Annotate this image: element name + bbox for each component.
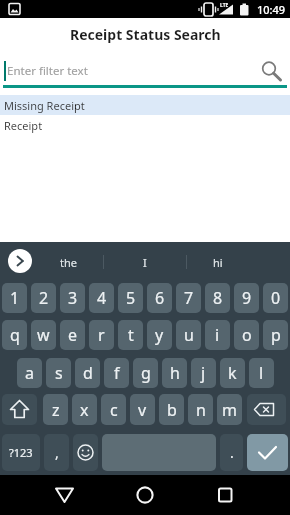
button[interactable]: Missing Receipt	[0, 95, 290, 115]
staticText: the	[60, 255, 77, 270]
button[interactable]: n	[188, 394, 213, 425]
staticText: 5	[126, 287, 136, 309]
button[interactable]	[247, 394, 286, 425]
staticText: Receipt Status Search	[70, 25, 221, 44]
staticText: LTE	[220, 2, 229, 9]
button[interactable]: q	[2, 320, 27, 350]
button[interactable]	[207, 478, 242, 512]
staticText: 8	[213, 287, 223, 309]
staticText: k	[228, 362, 237, 384]
button[interactable]: u	[176, 320, 201, 350]
button[interactable]	[127, 478, 162, 512]
staticText: f	[114, 362, 120, 384]
button[interactable]	[247, 434, 288, 471]
button[interactable]: j	[191, 358, 216, 388]
button[interactable]: x	[72, 394, 97, 425]
staticText: Missing Receipt	[4, 98, 85, 113]
button[interactable]: h	[162, 358, 187, 388]
staticText: v	[138, 399, 147, 421]
button[interactable]: e	[60, 320, 85, 350]
button[interactable]: l	[249, 358, 274, 388]
staticText: z	[52, 399, 60, 421]
button[interactable]: v	[130, 394, 155, 425]
staticText: u	[184, 324, 194, 346]
button[interactable]	[8, 249, 32, 273]
staticText: i	[215, 324, 220, 346]
button[interactable]: f	[104, 358, 129, 388]
staticText: a	[25, 362, 34, 384]
staticText: e	[68, 324, 78, 346]
staticText: t	[128, 324, 134, 346]
button[interactable]: i	[205, 320, 230, 350]
staticText: q	[10, 324, 20, 346]
staticText: n	[196, 399, 206, 421]
button[interactable]	[47, 478, 82, 512]
staticText: l	[259, 362, 264, 384]
button[interactable]: b	[159, 394, 184, 425]
button[interactable]: 9	[234, 283, 259, 313]
button[interactable]: t	[118, 320, 143, 350]
button[interactable]: g	[133, 358, 158, 388]
staticText: I	[143, 255, 147, 270]
button[interactable]: I	[104, 242, 186, 282]
staticText: h	[170, 362, 180, 384]
button[interactable]: k	[220, 358, 245, 388]
button[interactable]: w	[31, 320, 56, 350]
staticText: o	[242, 324, 252, 346]
button[interactable]: Receipt	[0, 115, 290, 135]
staticText: Receipt	[4, 118, 43, 133]
button[interactable]: s	[46, 358, 71, 388]
staticText: 7	[184, 287, 194, 309]
staticText: m	[222, 399, 237, 421]
button[interactable]: r	[89, 320, 114, 350]
button[interactable]: o	[234, 320, 259, 350]
staticText: x	[80, 399, 89, 421]
staticText: r	[98, 324, 105, 346]
button[interactable]: 4	[89, 283, 114, 313]
button[interactable]: 5	[118, 283, 143, 313]
staticText: w	[37, 324, 50, 346]
staticText: 6	[155, 287, 165, 309]
staticText: g	[141, 362, 151, 384]
staticText: 4	[97, 287, 107, 309]
staticText: .	[230, 443, 234, 462]
button[interactable]: 1	[2, 283, 27, 313]
staticText: ,	[55, 443, 59, 462]
staticText: ?123	[9, 445, 33, 460]
button[interactable]: the	[33, 242, 103, 282]
button[interactable]	[2, 394, 37, 425]
button[interactable]: p	[263, 320, 288, 350]
staticText: 2	[39, 287, 49, 309]
staticText: d	[83, 362, 93, 384]
button[interactable]: 8	[205, 283, 230, 313]
button[interactable]: c	[101, 394, 126, 425]
button[interactable]: y	[147, 320, 172, 350]
staticText: c	[110, 399, 118, 421]
button[interactable]: 2	[31, 283, 56, 313]
button[interactable]: a	[17, 358, 42, 388]
staticText: hi	[213, 255, 223, 270]
button[interactable]: ?123	[2, 434, 40, 471]
button[interactable]: m	[217, 394, 242, 425]
button[interactable]: z	[43, 394, 68, 425]
staticText: 9	[242, 287, 252, 309]
button[interactable]: 7	[176, 283, 201, 313]
button[interactable]: .	[220, 434, 243, 471]
staticText: j	[201, 362, 206, 384]
staticText: 3	[68, 287, 78, 309]
staticText: 0	[271, 287, 281, 309]
button[interactable]: ,	[44, 434, 69, 471]
button[interactable]: hi	[187, 242, 249, 282]
button[interactable]: d	[75, 358, 100, 388]
button[interactable]: 3	[60, 283, 85, 313]
staticText: s	[55, 362, 63, 384]
button[interactable]: 6	[147, 283, 172, 313]
staticText: b	[167, 399, 177, 421]
staticText: 10:49	[257, 2, 286, 17]
staticText: Enter filter text	[7, 63, 88, 79]
button[interactable]: 0	[263, 283, 288, 313]
button[interactable]	[73, 434, 98, 471]
staticText: y	[155, 324, 164, 346]
staticText: 1	[10, 287, 20, 309]
